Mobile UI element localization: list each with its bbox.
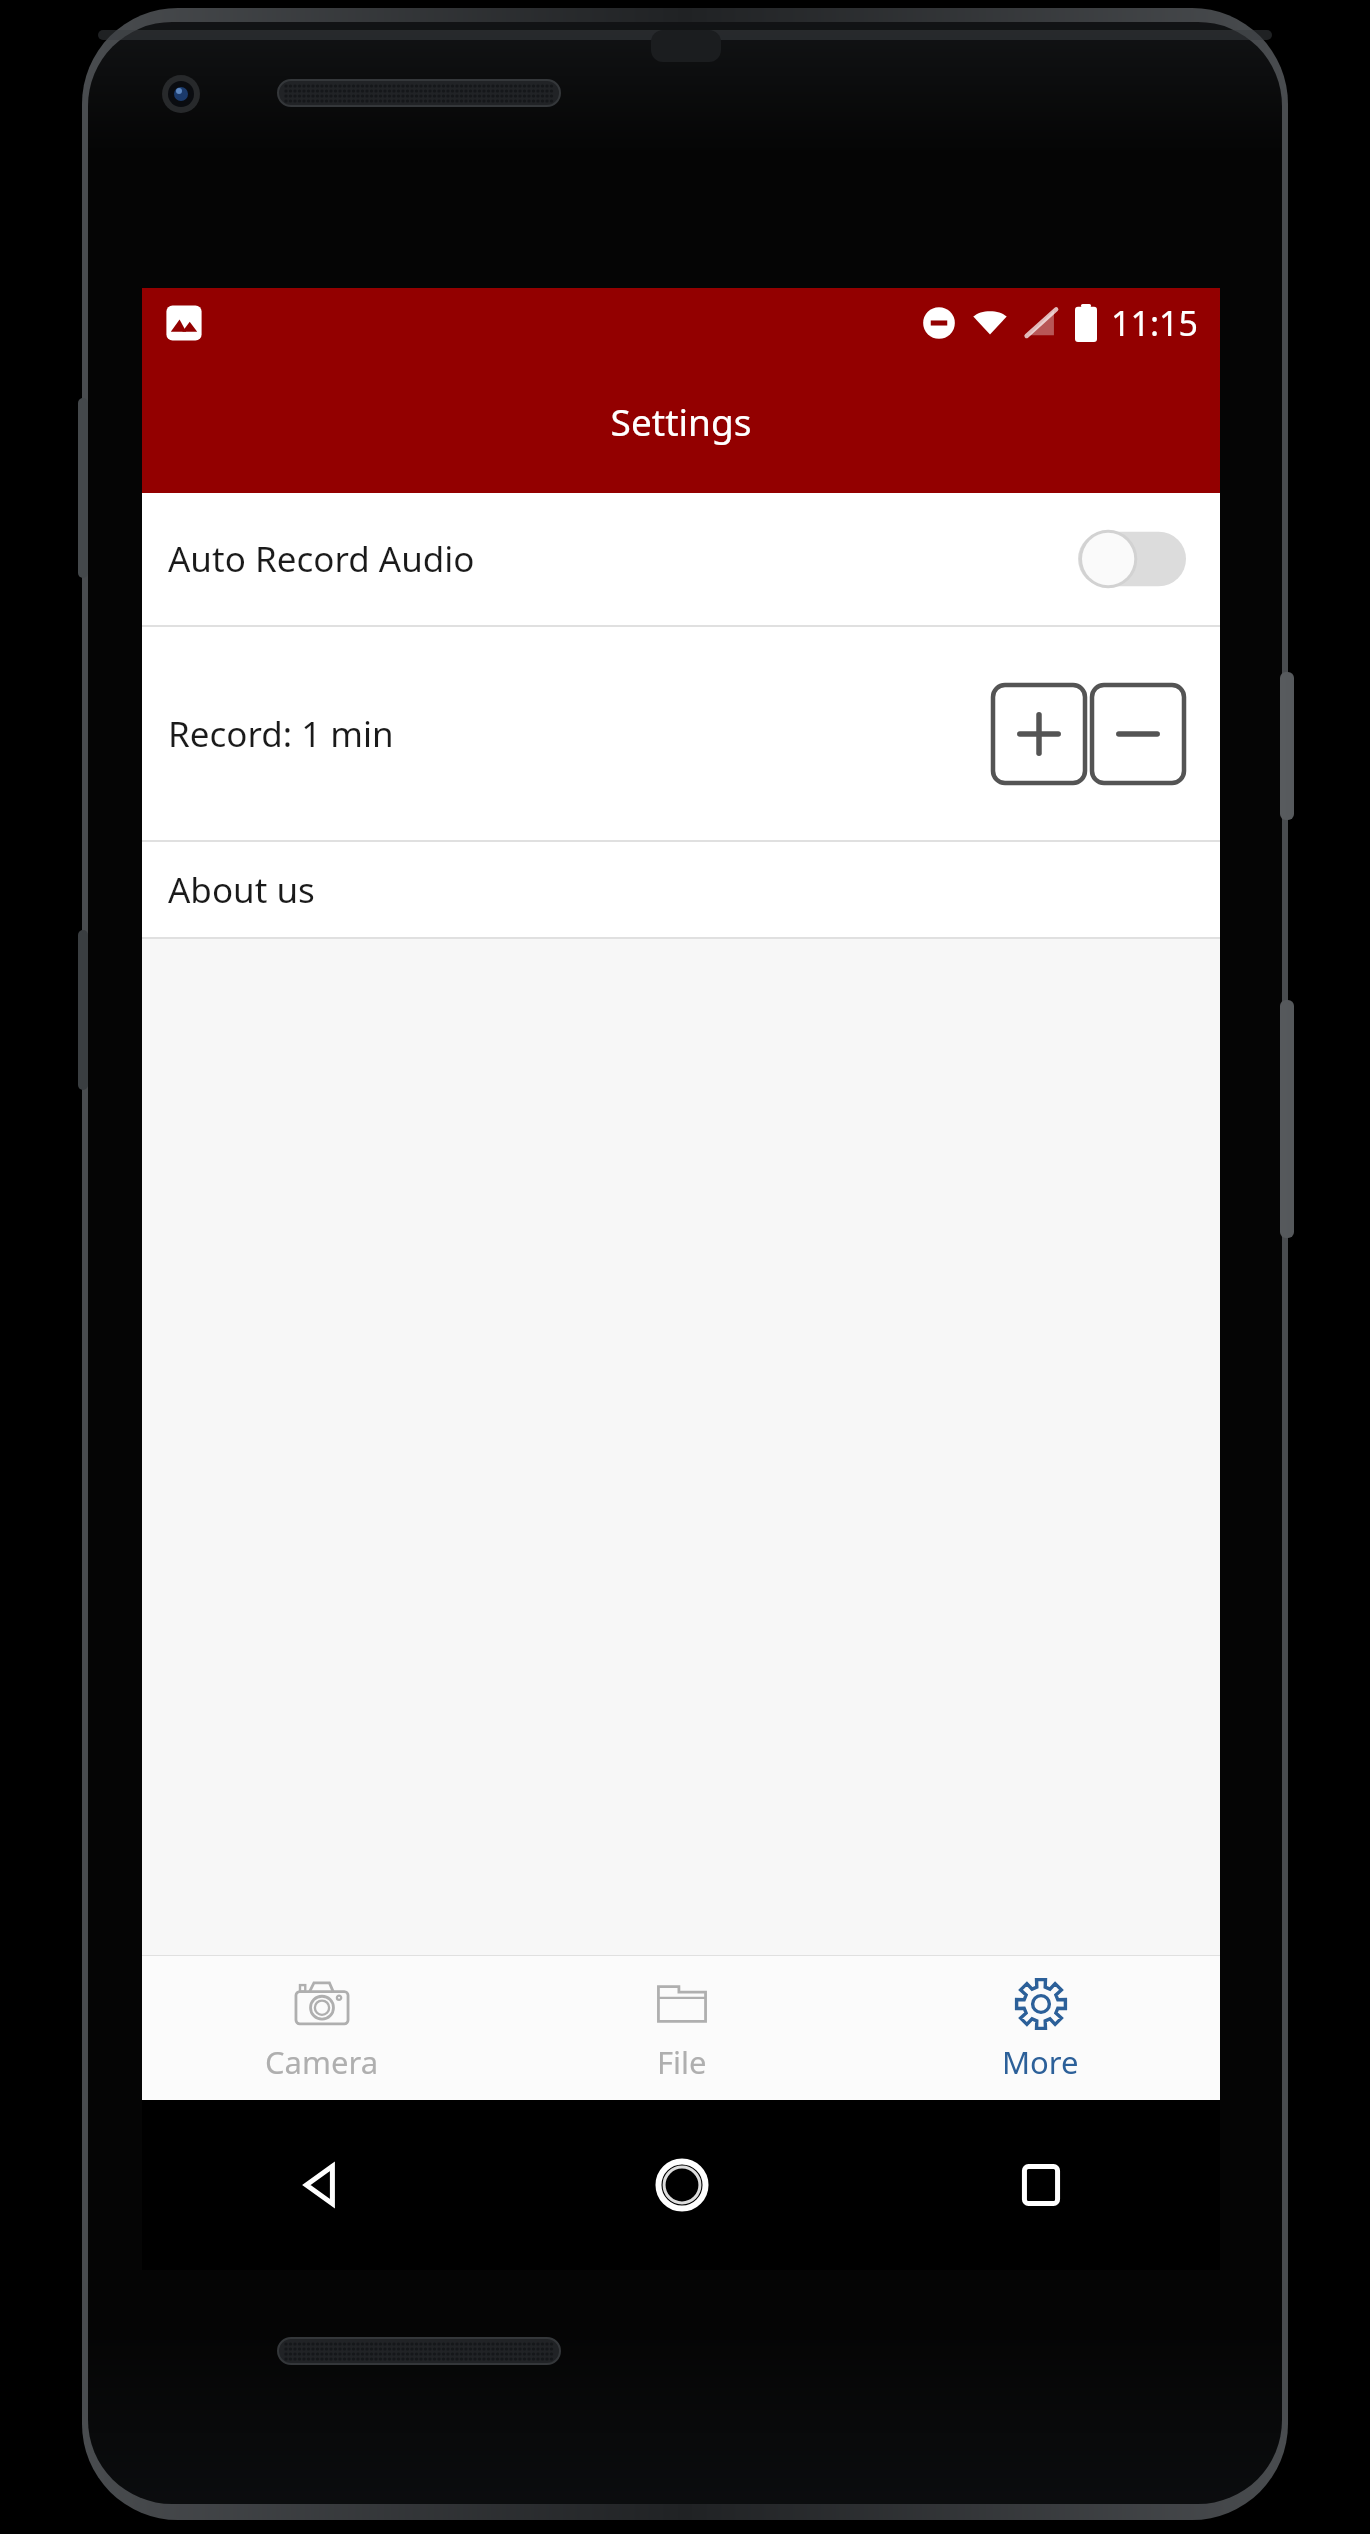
staticText: More [1002,2041,1079,2083]
button[interactable]: Recent apps [861,2100,1220,2270]
button[interactable]: Home [502,2100,861,2270]
button[interactable]: Back [142,2100,502,2270]
button[interactable]: About us [142,842,1220,937]
button[interactable]: File [502,1956,861,2100]
staticText: About us [168,866,315,914]
button[interactable]: More [861,1956,1220,2100]
button[interactable]: Decrease record time [1090,683,1186,785]
button[interactable]: Camera [142,1956,502,2100]
staticText: Record: 1 min [168,710,394,758]
staticText: Camera [265,2041,379,2083]
button[interactable]: Increase record time [991,683,1087,785]
staticText: File [657,2041,707,2083]
button[interactable]: Auto Record Audio toggle, off [1078,528,1186,590]
staticText: 11:15 [1111,300,1198,346]
staticText: Auto Record Audio [168,535,475,583]
staticText: Settings [142,396,1220,446]
button[interactable]: Auto Record Audio [142,493,1220,625]
